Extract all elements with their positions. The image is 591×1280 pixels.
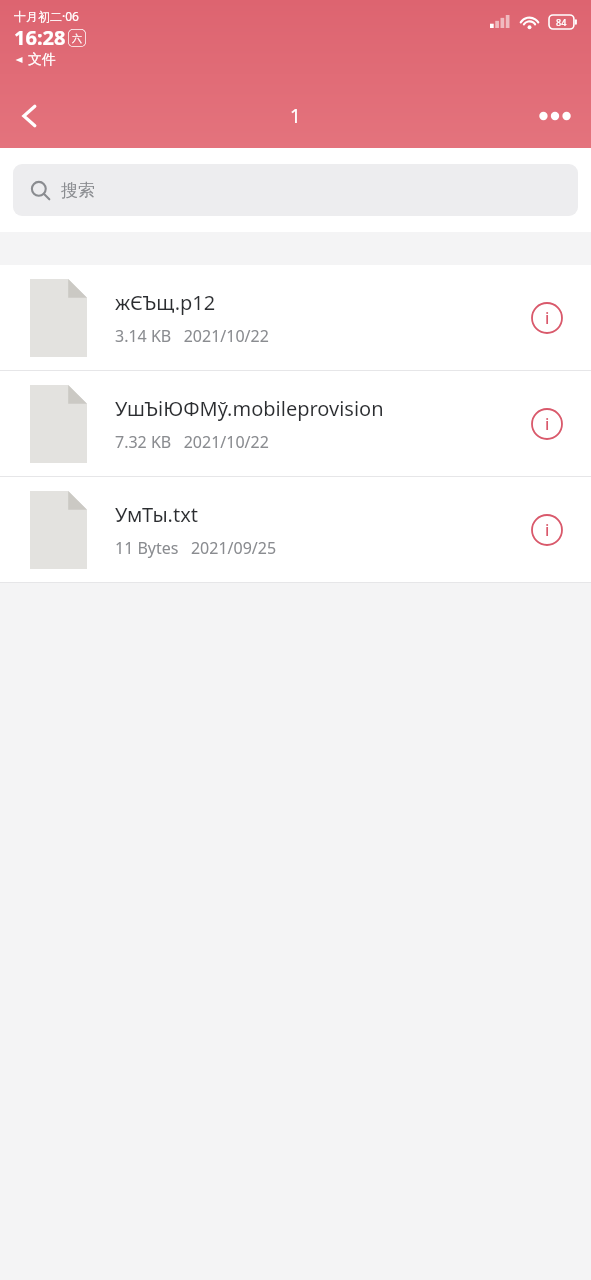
- staticText: 搜索: [61, 180, 95, 201]
- staticText: УмТы.txt: [115, 501, 198, 528]
- staticText: i: [545, 307, 550, 329]
- staticText: i: [545, 413, 550, 435]
- button[interactable]: УмТы.txt: [0, 477, 591, 582]
- staticText: 1: [290, 103, 301, 129]
- staticText: жЄЪщ.p12: [115, 289, 216, 316]
- staticText: 十月初二·06: [14, 8, 79, 24]
- button[interactable]: Info: [523, 400, 571, 448]
- staticText: 11 Bytes 2021/09/25: [115, 537, 277, 559]
- button[interactable]: Info: [523, 294, 571, 342]
- staticText: 7.32 KB 2021/10/22: [115, 431, 269, 453]
- button[interactable]: УшЪiЮФМў.mobileprovision: [0, 371, 591, 476]
- button[interactable]: Info: [523, 506, 571, 554]
- button[interactable]: жЄЪщ.p12: [0, 265, 591, 370]
- staticText: 六: [72, 32, 82, 45]
- staticText: 3.14 KB 2021/10/22: [115, 325, 269, 347]
- staticText: 16:28: [14, 24, 66, 51]
- staticText: 文件: [28, 51, 56, 69]
- button[interactable]: 搜索: [13, 164, 578, 216]
- staticText: 84: [556, 16, 567, 28]
- staticText: УшЪiЮФМў.mobileprovision: [115, 395, 384, 422]
- staticText: i: [545, 519, 550, 541]
- button[interactable]: More options: [531, 92, 579, 140]
- button[interactable]: Back: [8, 94, 52, 138]
